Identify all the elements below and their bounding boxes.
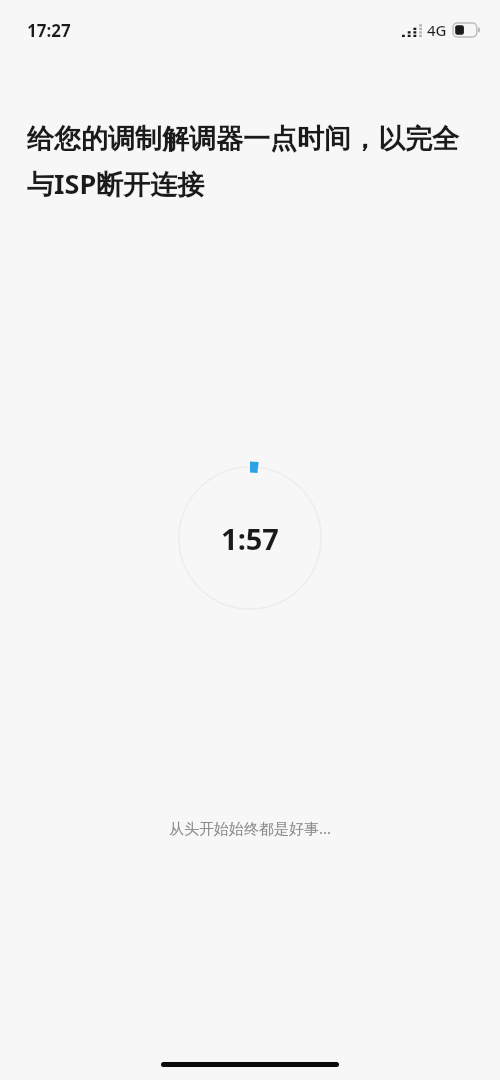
other: Battery xyxy=(453,23,480,37)
staticText: 从头开始始终都是好事... xyxy=(0,818,500,838)
other: Signal strength xyxy=(402,23,422,37)
staticText: 给您的调制解调器一点时间，以完全与ISP断开连接 xyxy=(27,122,460,202)
staticText: 1:57 xyxy=(221,519,279,558)
staticText: 17:27 xyxy=(27,19,71,42)
staticText: 4G xyxy=(427,20,447,40)
